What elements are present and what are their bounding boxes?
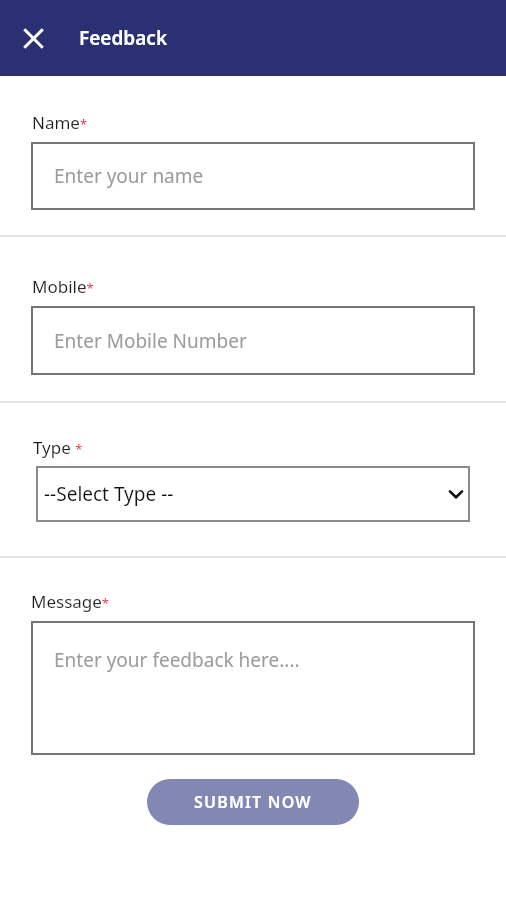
button[interactable]: SUBMIT NOW	[147, 779, 359, 825]
staticText: Message*	[31, 590, 110, 613]
staticText: Enter your feedback here....	[54, 647, 300, 673]
staticText: Name*	[32, 111, 88, 134]
staticText: Enter Mobile Number	[54, 328, 247, 354]
staticText: --Select Type --	[44, 481, 174, 507]
button[interactable]: Close	[13, 18, 53, 58]
button[interactable]: Enter your name	[31, 142, 475, 210]
staticText: Type *	[33, 436, 83, 459]
staticText: Feedback	[79, 25, 168, 51]
staticText: Enter your name	[54, 163, 204, 189]
button[interactable]: Enter your feedback here....	[31, 621, 475, 755]
staticText: Mobile*	[32, 275, 94, 298]
button[interactable]: Enter Mobile Number	[31, 306, 475, 375]
staticText: SUBMIT NOW	[194, 791, 312, 813]
button[interactable]: --Select Type --	[36, 466, 470, 522]
